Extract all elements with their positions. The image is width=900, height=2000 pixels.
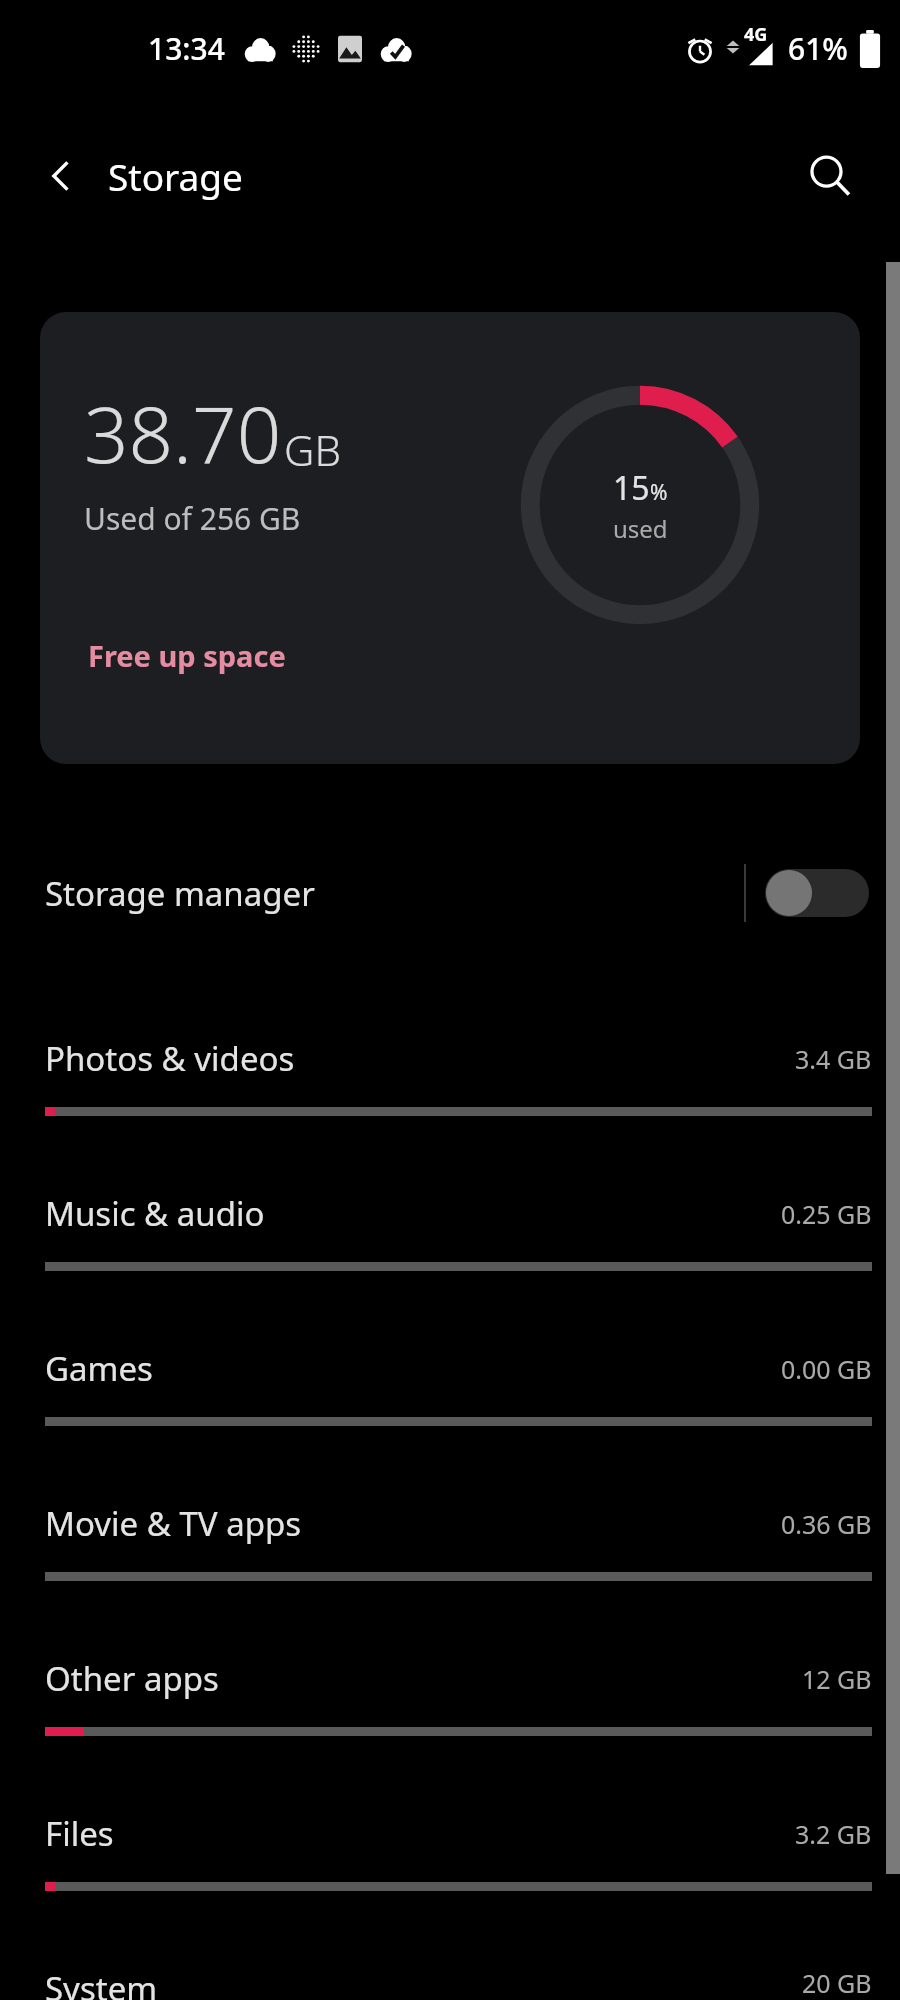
button[interactable]: Storage manager toggle <box>758 853 876 933</box>
button[interactable]: Movie & TV apps <box>0 1463 900 1618</box>
staticText: 38.70 <box>84 380 282 486</box>
staticText: Games <box>45 1346 153 1391</box>
staticText: 12 GB <box>802 1662 872 1696</box>
button[interactable]: Search <box>790 136 870 216</box>
button[interactable]: Games <box>0 1308 900 1463</box>
staticText: Music & audio <box>45 1191 265 1236</box>
staticText: 20 GB <box>802 1966 872 2000</box>
staticText: Photos & videos <box>45 1036 295 1081</box>
staticText: % <box>650 478 668 507</box>
button[interactable]: Music & audio <box>0 1153 900 1308</box>
staticText: 0.25 GB <box>781 1197 872 1231</box>
staticText: Storage <box>108 151 243 201</box>
button[interactable]: Storage manager <box>0 828 900 958</box>
button[interactable]: System <box>0 1928 900 2000</box>
button[interactable]: Files <box>0 1773 900 1928</box>
staticText: Movie & TV apps <box>45 1501 302 1546</box>
staticText: Other apps <box>45 1656 219 1701</box>
staticText: 13:34 <box>148 28 225 69</box>
staticText: 15 <box>613 466 650 510</box>
button[interactable]: Other apps <box>0 1618 900 1773</box>
staticText: Used of 256 GB <box>84 498 301 539</box>
staticText: Storage manager <box>45 871 315 916</box>
staticText: Free up space <box>88 636 286 675</box>
staticText: 4G <box>744 22 768 47</box>
staticText: GB <box>284 421 341 478</box>
button[interactable]: 38.70 <box>40 312 860 764</box>
button[interactable]: Photos & videos <box>0 998 900 1153</box>
staticText: Files <box>45 1811 114 1856</box>
button[interactable]: Free up space <box>84 632 290 679</box>
staticText: 0.00 GB <box>781 1352 872 1386</box>
button[interactable]: Back <box>24 138 100 214</box>
staticText: used <box>613 512 668 545</box>
staticText: 3.2 GB <box>795 1817 872 1851</box>
staticText: 3.4 GB <box>795 1042 872 1076</box>
staticText: System <box>45 1966 158 2000</box>
staticText: 61% <box>788 28 848 69</box>
staticText: 0.36 GB <box>781 1507 872 1541</box>
